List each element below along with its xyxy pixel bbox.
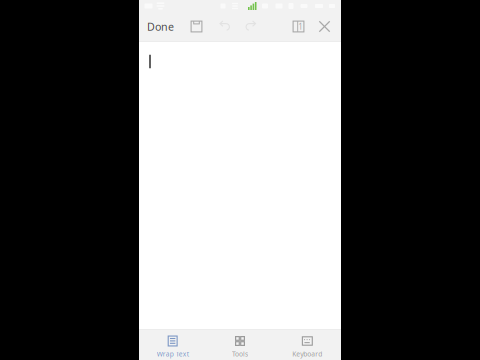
button[interactable]: Wrap Text <box>139 330 206 360</box>
staticText: Tools <box>232 350 248 358</box>
staticText: Done <box>147 19 174 34</box>
button[interactable]: Page 1 <box>286 14 311 39</box>
staticText: 1 <box>298 21 303 32</box>
button[interactable]: Done <box>142 14 178 39</box>
button[interactable]: Keyboard <box>274 330 341 360</box>
button[interactable]: Save <box>184 14 209 39</box>
button[interactable]: Close <box>312 14 337 39</box>
staticText: Wrap Text <box>157 350 189 358</box>
staticText: Keyboard <box>292 350 322 358</box>
button[interactable]: Tools <box>206 330 274 360</box>
